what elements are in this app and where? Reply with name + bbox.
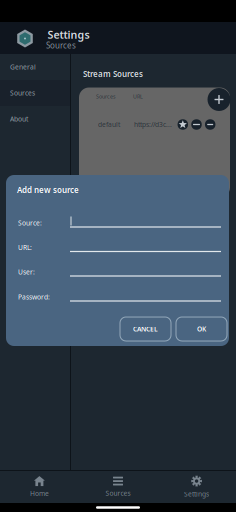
staticText: CANCEL (133, 325, 158, 333)
button[interactable]: Settings (157, 471, 236, 503)
staticText: OK (197, 325, 206, 333)
staticText: Sources (105, 489, 130, 498)
staticText: Password: (18, 293, 50, 301)
button[interactable]: Home (0, 471, 79, 503)
button[interactable]: Sources (79, 471, 157, 503)
staticText: Add new source (17, 185, 79, 195)
button[interactable]: CANCEL (120, 317, 171, 341)
button[interactable]: About (0, 106, 70, 132)
staticText: Sources (10, 89, 35, 97)
staticText: About (10, 115, 28, 123)
staticText: User: (18, 268, 35, 276)
button[interactable]: Sources (0, 80, 70, 106)
staticText: Settings (47, 27, 89, 42)
button[interactable]: Add source (207, 88, 230, 111)
button[interactable]: Favourite (178, 119, 188, 130)
staticText: Stream Sources (83, 69, 143, 79)
staticText: Settings (184, 490, 209, 498)
staticText: URL: (18, 243, 32, 252)
staticText: https://d3c... (134, 120, 172, 129)
staticText: General (10, 63, 36, 71)
staticText: Source: (18, 219, 42, 227)
button[interactable]: OK (176, 317, 227, 341)
staticText: Sources (96, 93, 116, 100)
staticText: Sources (46, 40, 76, 51)
button[interactable]: General (0, 54, 70, 80)
button[interactable]: Remove (205, 119, 215, 130)
staticText: default (98, 120, 120, 129)
button[interactable]: Edit (191, 119, 202, 130)
staticText: URL (133, 93, 143, 100)
staticText: Home (30, 489, 49, 498)
